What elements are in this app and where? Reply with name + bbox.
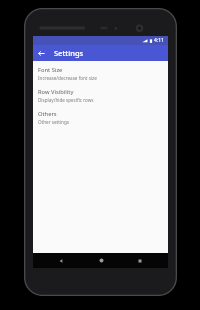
staticText: Font Size	[38, 66, 63, 74]
staticText: Other settings	[38, 119, 69, 125]
button[interactable]: Back	[50, 253, 72, 268]
staticText: Display/hide specific rows	[38, 97, 94, 103]
button[interactable]: Home	[90, 253, 112, 268]
button[interactable]: Others	[38, 109, 163, 126]
button[interactable]: Font Size	[38, 65, 163, 82]
button[interactable]: Recent apps	[129, 253, 151, 268]
button[interactable]: Back	[33, 45, 49, 61]
staticText: 4:11	[154, 37, 164, 44]
staticText: Others	[38, 110, 57, 118]
staticText: Settings	[54, 48, 84, 58]
button[interactable]: Row Visibility	[38, 87, 163, 104]
staticText: Increase/decrease font size	[38, 75, 97, 81]
staticText: Row Visibility	[38, 88, 74, 96]
